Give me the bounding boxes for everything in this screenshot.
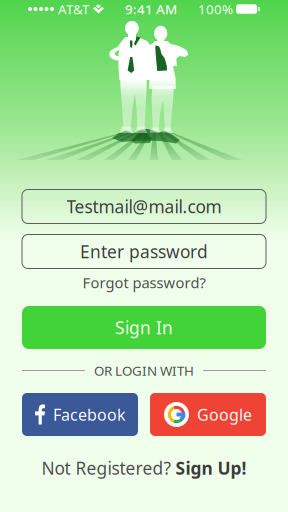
button[interactable]: Facebook xyxy=(22,393,138,436)
staticText: AT&T xyxy=(58,0,89,18)
staticText: Facebook xyxy=(53,404,126,425)
staticText: Testmail@mail.com xyxy=(66,195,221,218)
staticText: OR LOGIN WITH xyxy=(94,362,194,379)
staticText: Sign Up! xyxy=(175,456,246,479)
staticText: Forgot password? xyxy=(82,273,205,292)
staticText: 9:41 AM xyxy=(125,0,177,18)
button[interactable]: Forgot password? xyxy=(22,274,266,290)
staticText: Enter password xyxy=(80,240,208,263)
button[interactable]: Sign In xyxy=(22,306,266,349)
staticText: 100% xyxy=(198,0,233,18)
button[interactable]: Enter password xyxy=(22,234,266,268)
button[interactable]: Not Registered? xyxy=(22,456,266,480)
staticText: Not Registered? xyxy=(41,456,171,479)
staticText: Google xyxy=(197,404,252,425)
button[interactable]: Testmail@mail.com xyxy=(22,189,266,223)
button[interactable]: Google xyxy=(150,393,266,436)
staticText: Sign In xyxy=(115,316,173,339)
